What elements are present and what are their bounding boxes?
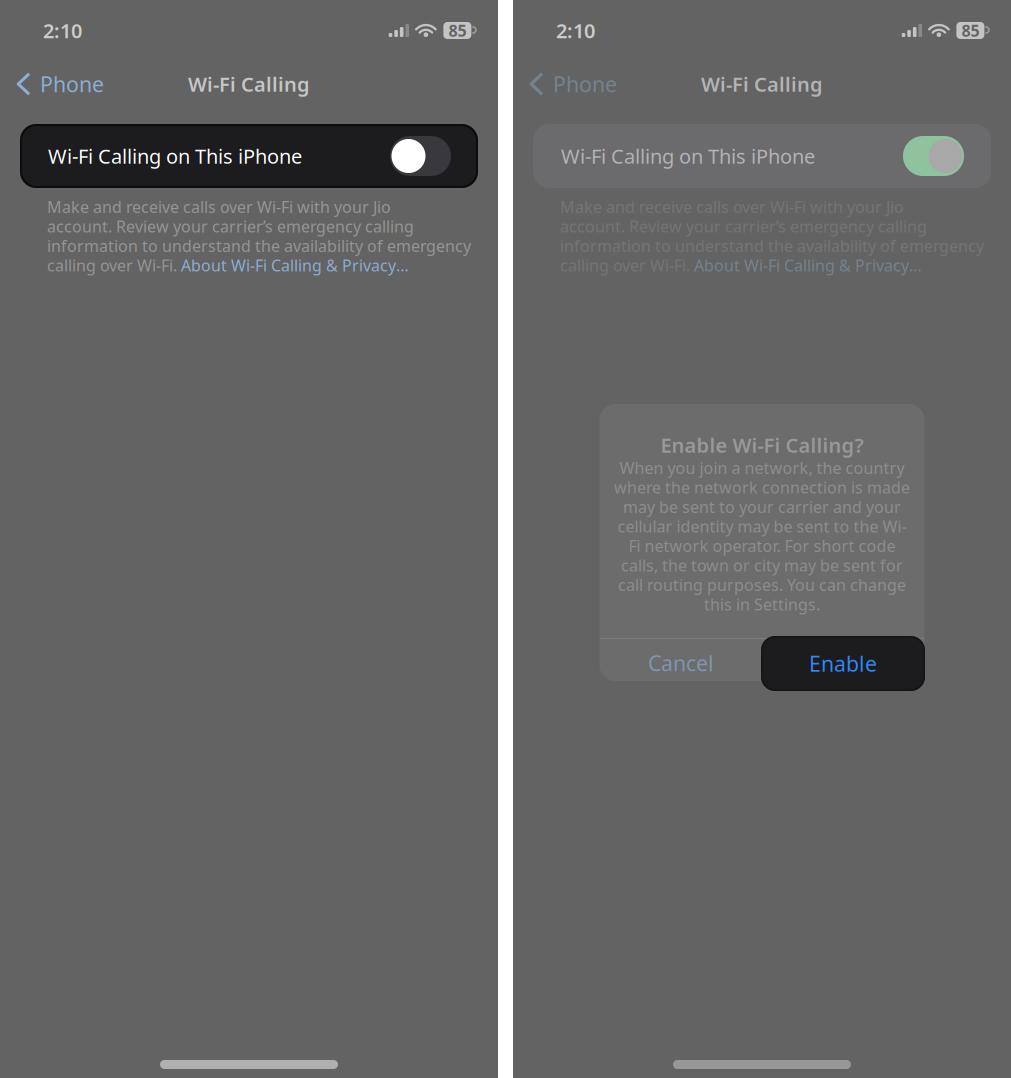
staticText: Cancel	[648, 649, 714, 677]
staticText: Wi-Fi Calling	[188, 71, 310, 97]
staticText: Wi-Fi Calling on This iPhone	[561, 143, 815, 169]
staticText: this in Settings.	[704, 594, 820, 615]
button[interactable]: Cancel	[600, 642, 762, 684]
staticText: calling over Wi-Fi.	[560, 255, 694, 276]
staticText: cellular identity may be sent to the Wi-	[617, 516, 906, 537]
staticText: Fi network operator. For short code	[628, 535, 895, 556]
staticText: account. Review your carrier’s emergency…	[47, 216, 414, 237]
staticText: information to understand the availabili…	[47, 235, 471, 256]
staticText: 85	[961, 20, 979, 41]
staticText: call routing purposes. You can change	[618, 574, 906, 595]
staticText: Make and receive calls over Wi-Fi with y…	[560, 196, 904, 217]
button[interactable]: About Wi-Fi Calling & Privacy…	[181, 255, 409, 276]
staticText: Enable	[809, 649, 877, 678]
staticText: account. Review your carrier’s emergency…	[560, 216, 927, 237]
staticText: where the network connection is made	[614, 477, 910, 498]
staticText: may be sent to your carrier and your	[623, 496, 901, 517]
button[interactable]: Wi-Fi Calling on This iPhone	[20, 124, 478, 188]
staticText: 2:10	[556, 17, 595, 44]
staticText: Wi-Fi Calling on This iPhone	[48, 143, 302, 169]
staticText: Enable Wi-Fi Calling?	[660, 432, 863, 458]
staticText: information to understand the availabili…	[560, 235, 984, 256]
staticText: Phone	[40, 70, 104, 98]
staticText: Wi-Fi Calling	[701, 71, 823, 97]
staticText: Phone	[553, 70, 617, 98]
staticText: About Wi-Fi Calling & Privacy…	[181, 255, 409, 276]
staticText: When you join a network, the country	[619, 457, 904, 478]
button[interactable]: Wi-Fi Calling on This iPhone	[533, 124, 991, 188]
staticText: About Wi-Fi Calling & Privacy…	[694, 255, 922, 276]
button[interactable]: About Wi-Fi Calling & Privacy…	[694, 255, 922, 276]
button[interactable]: Enable	[761, 636, 925, 691]
button[interactable]: Phone	[513, 62, 629, 106]
staticText: 85	[448, 20, 466, 41]
button[interactable]: Phone	[0, 62, 116, 106]
staticText: calling over Wi-Fi.	[47, 255, 181, 276]
staticText: calls, the town or city may be sent for	[621, 555, 903, 576]
staticText: Make and receive calls over Wi-Fi with y…	[47, 196, 391, 217]
staticText: 2:10	[43, 17, 82, 44]
